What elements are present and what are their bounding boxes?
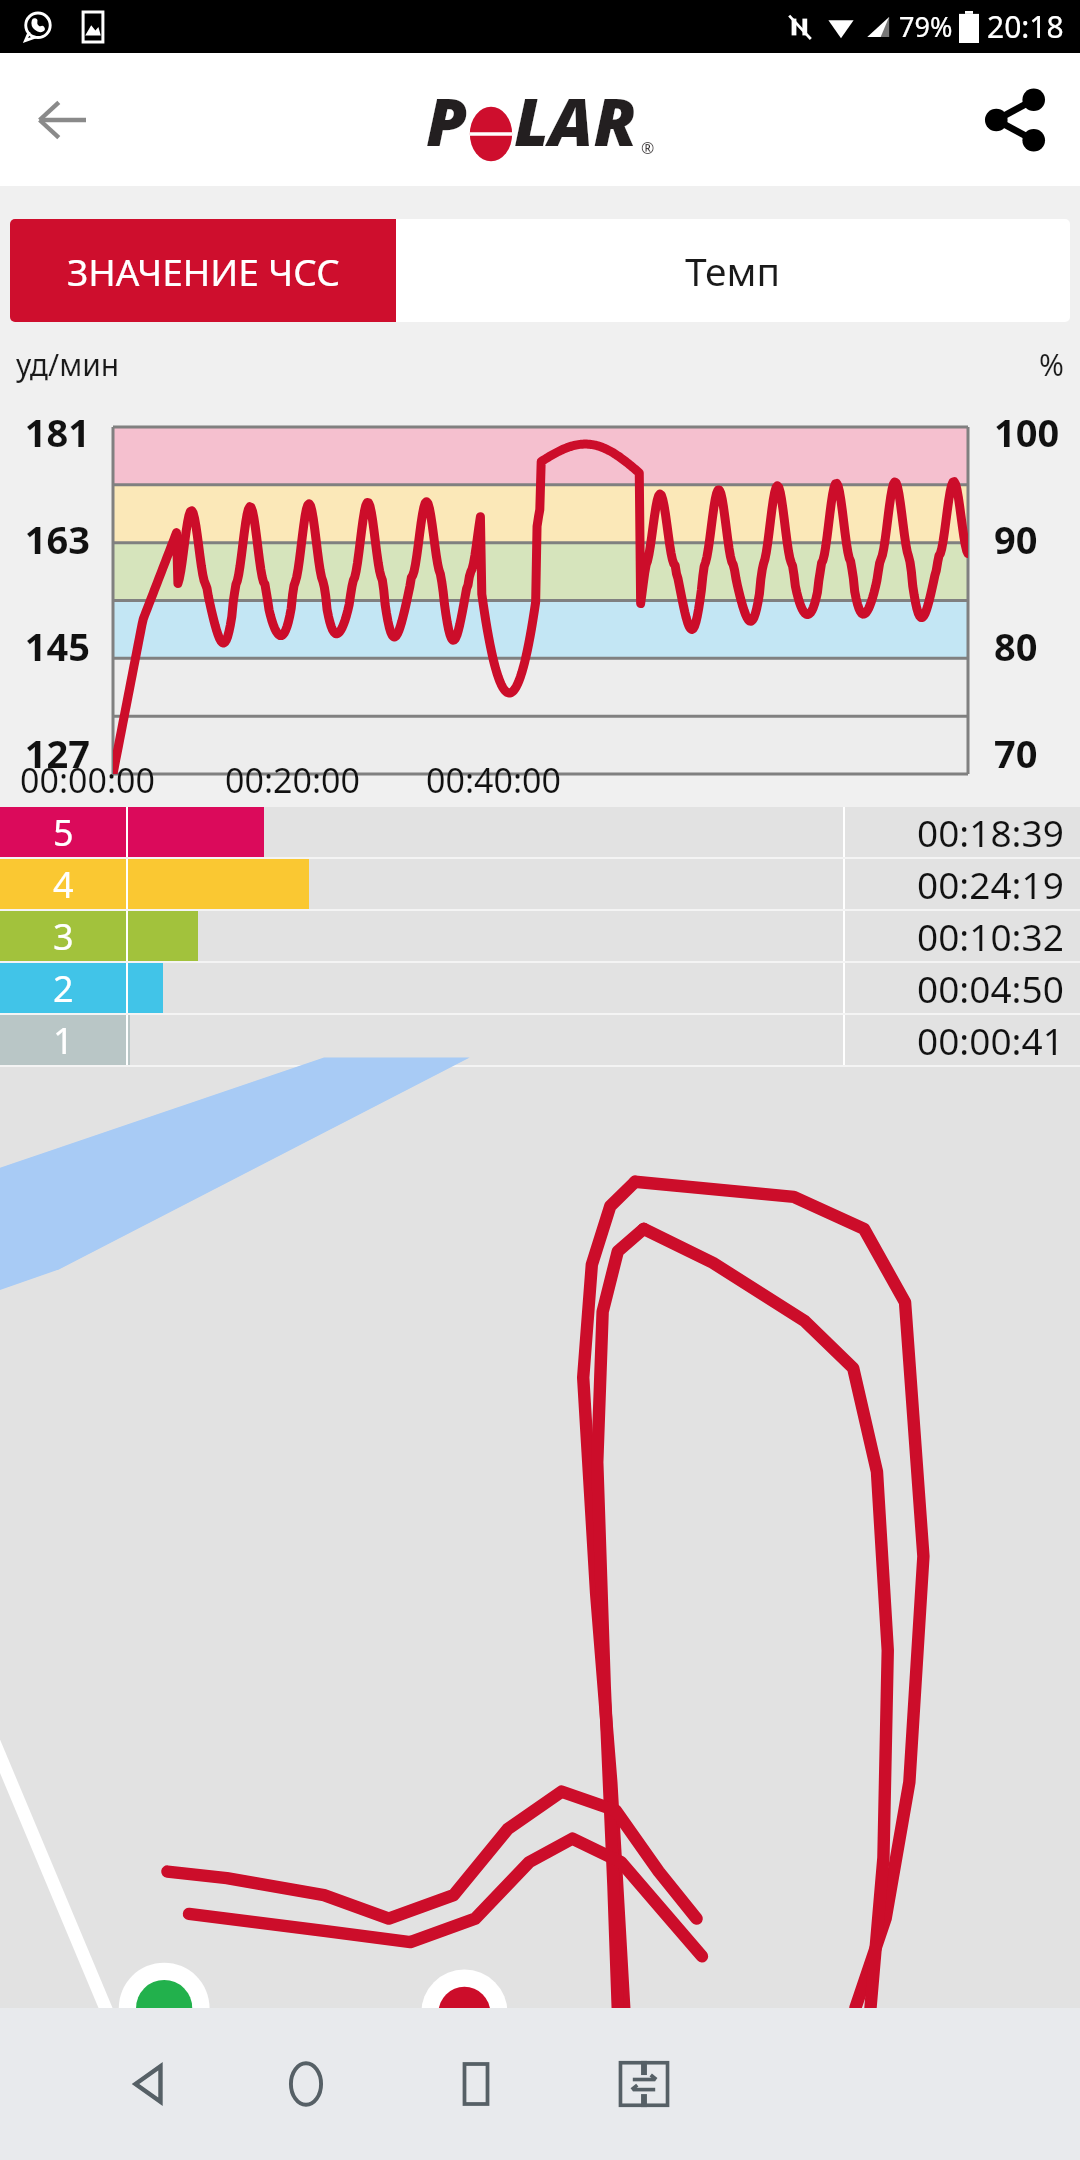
staticText: 127 xyxy=(0,727,90,779)
staticText: 00:40:00 xyxy=(426,757,561,803)
staticText: 00:10:32 xyxy=(917,911,1064,961)
button[interactable]: Switch app xyxy=(592,2032,696,2136)
staticText: 181 xyxy=(0,406,90,458)
staticText: 00:18:39 xyxy=(917,807,1064,857)
button[interactable]: 2 xyxy=(0,963,1080,1013)
button[interactable]: ЗНАЧЕНИЕ ЧСС xyxy=(10,219,396,322)
staticText: 00:04:50 xyxy=(917,963,1064,1013)
staticText: 5 xyxy=(53,808,74,857)
staticText: 00:00:00 xyxy=(20,757,155,803)
staticText: 3 xyxy=(53,912,74,961)
staticText: Темп xyxy=(685,244,781,297)
button[interactable]: 1 xyxy=(0,1015,1080,1065)
button[interactable]: Share xyxy=(976,81,1054,159)
staticText: 70 xyxy=(994,727,1080,779)
staticText: 1 xyxy=(53,1016,74,1065)
staticText: ® xyxy=(641,137,655,159)
staticText: 109 xyxy=(0,834,90,886)
staticText: 2 xyxy=(53,964,74,1013)
staticText: 00:24:19 xyxy=(917,859,1064,909)
button[interactable]: Recent apps xyxy=(424,2032,528,2136)
button[interactable]: Home xyxy=(254,2032,358,2136)
staticText: 90 xyxy=(994,513,1080,565)
staticText: 20:18 xyxy=(987,6,1064,47)
button[interactable]: Back xyxy=(22,80,102,160)
staticText: 163 xyxy=(0,513,90,565)
button[interactable]: 4 xyxy=(0,859,1080,909)
staticText: 80 xyxy=(994,620,1080,672)
staticText: 79% xyxy=(899,8,953,45)
staticText: 145 xyxy=(0,620,90,672)
button[interactable]: 5 xyxy=(0,807,1080,857)
staticText: 50 xyxy=(994,941,1080,993)
staticText: % xyxy=(1039,344,1064,385)
staticText: ЗНАЧЕНИЕ ЧСС xyxy=(67,246,340,296)
staticText: 00:20:00 xyxy=(225,757,360,803)
button[interactable]: Темп xyxy=(396,219,1070,322)
button[interactable]: 3 xyxy=(0,911,1080,961)
staticText: уд/мин xyxy=(16,344,120,385)
staticText: 91 xyxy=(0,941,90,993)
staticText: 60 xyxy=(994,834,1080,886)
staticText: 00:00:41 xyxy=(917,1015,1064,1065)
button[interactable]: Back xyxy=(96,2032,200,2136)
staticText: LAR xyxy=(514,75,637,165)
staticText: P xyxy=(426,75,468,165)
staticText: 100 xyxy=(994,406,1080,458)
staticText: 4 xyxy=(53,860,74,909)
